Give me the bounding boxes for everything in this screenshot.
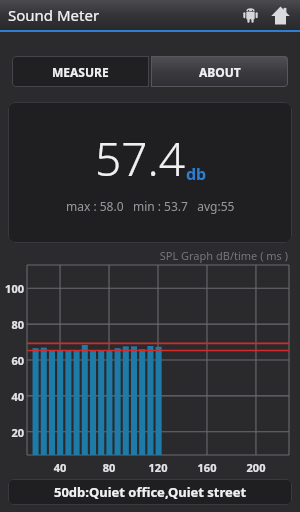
button[interactable]: 57.4 — [8, 102, 292, 243]
staticText: 40 — [0, 389, 24, 404]
staticText: 80 — [0, 317, 24, 332]
staticText: Sound Meter — [8, 5, 100, 25]
staticText: 40 — [44, 460, 76, 475]
staticText: db — [186, 163, 207, 185]
button[interactable]: ABOUT — [151, 56, 288, 87]
staticText: 50db:Quiet office,Quiet street — [54, 483, 247, 501]
button[interactable]: MEASURE — [12, 56, 149, 87]
staticText: MEASURE — [52, 64, 109, 80]
staticText: 160 — [191, 460, 223, 475]
staticText: SPL Graph dB/time ( ms ) — [0, 248, 288, 263]
button[interactable]: 50db:Quiet office,Quiet street — [8, 479, 292, 505]
staticText: 57.4 — [95, 127, 186, 190]
staticText: 80 — [93, 460, 125, 475]
staticText: 200 — [240, 460, 272, 475]
staticText: 100 — [0, 281, 24, 296]
button[interactable]: Android robot — [235, 0, 265, 30]
staticText: 20 — [0, 425, 24, 440]
staticText: 120 — [142, 460, 174, 475]
staticText: ABOUT — [199, 64, 241, 80]
button[interactable]: Home — [265, 0, 295, 30]
staticText: max : 58.0 min : 53.7 avg:55 — [66, 198, 235, 214]
staticText: 60 — [0, 353, 24, 368]
